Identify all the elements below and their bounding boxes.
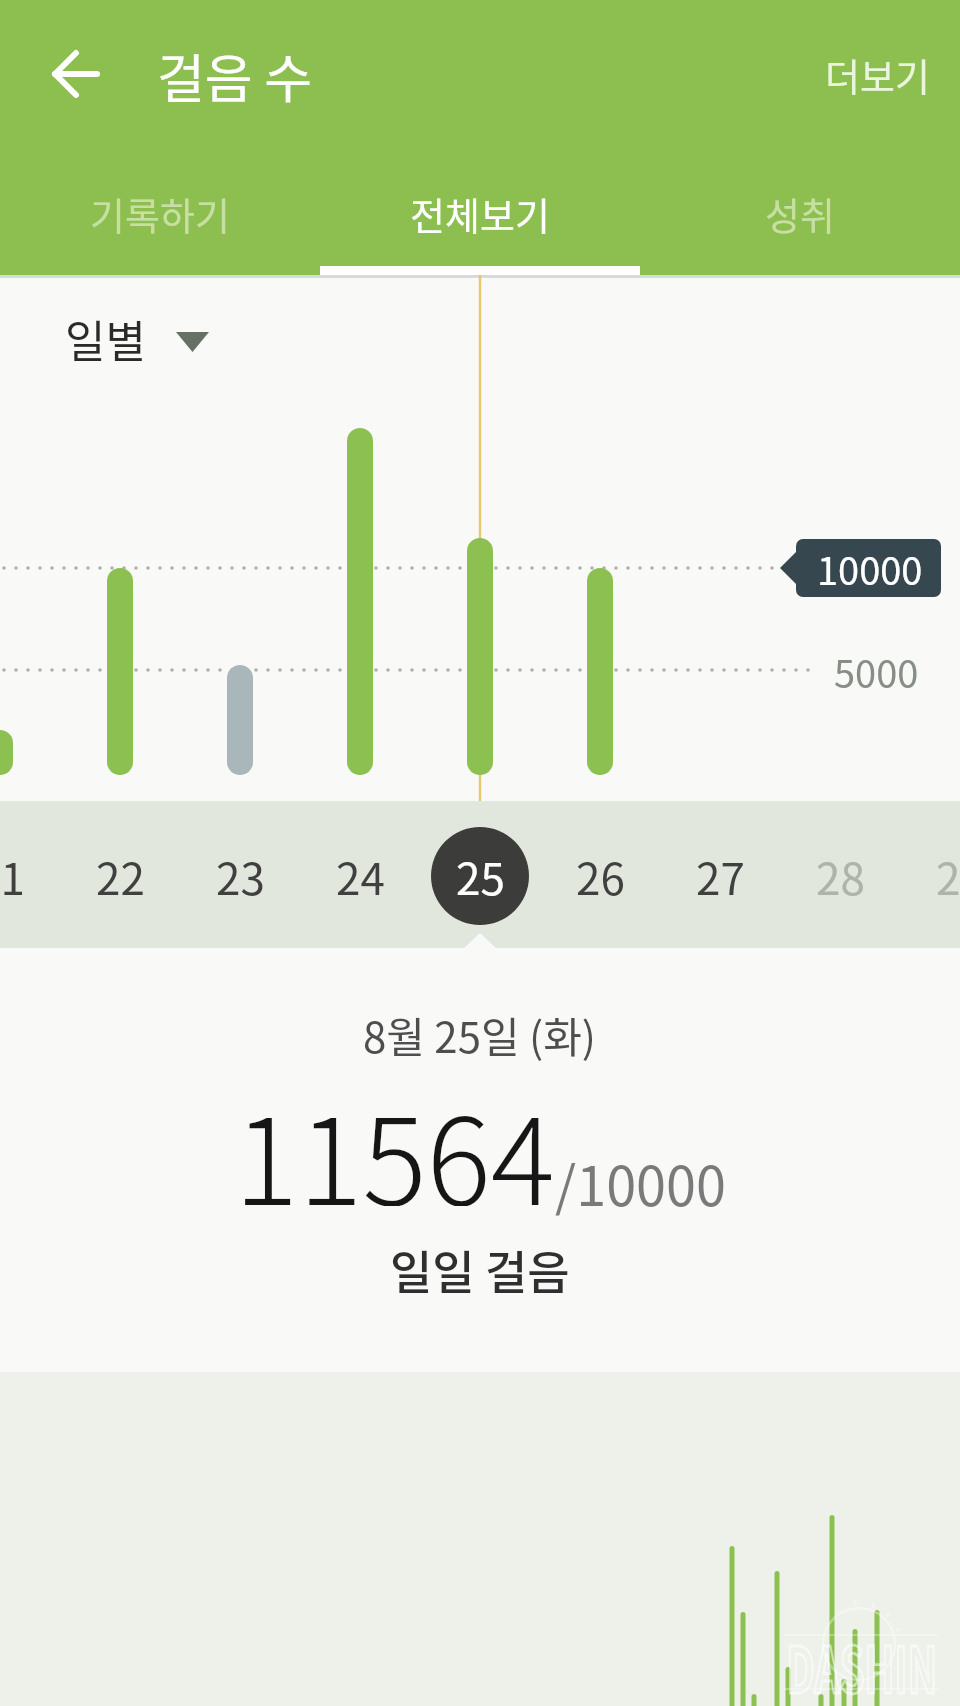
button[interactable]: 22 xyxy=(60,836,180,916)
staticText: 성취 xyxy=(765,186,835,241)
button[interactable]: 26 xyxy=(540,836,660,916)
staticText: 22 xyxy=(96,844,145,908)
button[interactable]: 27 xyxy=(660,836,780,916)
staticText: 걸음 수 xyxy=(157,38,313,113)
button[interactable]: 24 xyxy=(300,836,420,916)
staticText: 11564 xyxy=(234,1066,555,1206)
staticText: 전체보기 xyxy=(410,186,550,241)
staticText: 기록하기 xyxy=(90,186,230,241)
staticText: 일일 걸음 xyxy=(390,1236,570,1303)
button[interactable]: 일별 xyxy=(40,304,170,374)
button[interactable]: 23 xyxy=(180,836,300,916)
staticText: 23 xyxy=(216,844,265,908)
staticText: /10000 xyxy=(555,1143,727,1221)
button[interactable]: 25 xyxy=(420,836,540,916)
staticText: 더보기 xyxy=(825,47,930,102)
button[interactable]: 더보기 xyxy=(797,39,957,109)
button[interactable]: 21 xyxy=(0,836,60,916)
staticText: DASHIN xyxy=(786,1619,938,1706)
staticText: 8월 25일 (화) xyxy=(363,1004,597,1065)
staticText: 27 xyxy=(696,844,745,908)
staticText: 25 xyxy=(456,844,505,908)
button[interactable]: 성취 xyxy=(640,173,960,253)
staticText: 21 xyxy=(0,844,25,908)
staticText: 26 xyxy=(576,844,625,908)
button[interactable] xyxy=(40,45,110,105)
button[interactable]: 전체보기 xyxy=(320,173,640,253)
staticText: 24 xyxy=(336,844,385,908)
staticText: 5000 xyxy=(834,644,919,699)
button[interactable]: 기록하기 xyxy=(0,173,320,253)
staticText: 29 xyxy=(936,844,960,908)
staticText: 28 xyxy=(816,844,865,908)
staticText: 10000 xyxy=(817,541,923,596)
staticText: 일별 xyxy=(65,307,146,371)
